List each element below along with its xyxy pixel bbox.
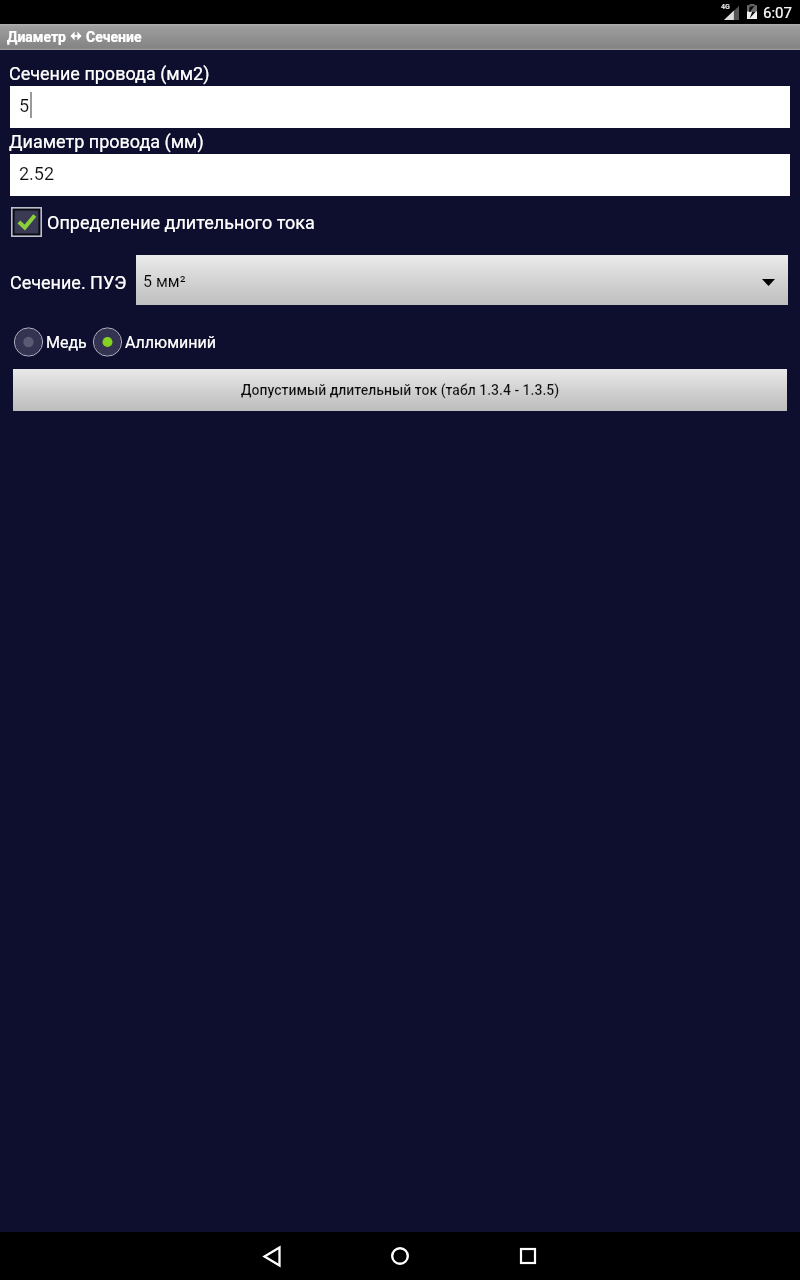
staticText: 5 [19,95,30,116]
staticText: 4G [721,3,730,11]
staticText: Диаметр провода (мм) [9,131,204,152]
button[interactable]: Home [376,1232,424,1280]
button[interactable]: Допустимый длительный ток (табл 1.3.4 - … [13,369,787,411]
button[interactable]: Recent apps [504,1232,552,1280]
button[interactable]: 2.52 [10,154,790,196]
button[interactable]: Аллюминий [92,327,216,357]
button[interactable]: 5 мм² [136,255,788,305]
staticText: 2.52 [19,163,55,184]
staticText: Сечение. ПУЭ [10,272,127,293]
button[interactable]: 5 [10,86,790,128]
staticText: Сечение [86,29,142,45]
staticText: 5 мм² [143,272,186,291]
staticText: Определение длительного тока [47,212,315,233]
staticText: 6:07 [763,4,792,22]
staticText: Аллюминий [125,333,216,352]
staticText: Диаметр [7,29,66,45]
button[interactable]: Back [248,1232,296,1280]
staticText: Допустимый длительный ток (табл 1.3.4 - … [241,382,560,398]
staticText: Медь [46,333,87,352]
button[interactable]: Определение длительного тока [0,204,800,240]
button[interactable]: Медь [13,327,87,357]
staticText: Сечение провода (мм2) [9,63,210,84]
